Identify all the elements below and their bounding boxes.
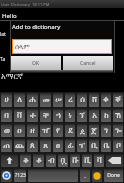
- staticText: Hello: [2, 12, 17, 20]
- button[interactable]: ኸ: [113, 109, 123, 122]
- button[interactable]: ቨ: [14, 109, 25, 122]
- staticText: ሀ: [4, 96, 9, 104]
- button[interactable]: ቢ: [89, 139, 99, 152]
- staticText: lat: [0, 31, 6, 38]
- staticText: አማርኛ: [1, 73, 23, 81]
- staticText: ሠ: [55, 96, 62, 104]
- staticText: User Dictionary 18:11 PM: [1, 2, 50, 7]
- button[interactable]: ጰ: [27, 139, 38, 152]
- button[interactable]: አ: [89, 109, 99, 122]
- button[interactable]: ዠ: [40, 124, 51, 137]
- staticText: ረ: [68, 96, 73, 104]
- button[interactable]: Backspace: [106, 154, 123, 167]
- button[interactable]: .: [80, 169, 90, 182]
- button[interactable]: ደ: [65, 124, 75, 137]
- button[interactable]: የ: [53, 124, 63, 137]
- staticText: ለ: [17, 96, 22, 104]
- staticText: ጸ: [43, 142, 48, 150]
- button[interactable]: [28, 169, 78, 182]
- staticText: ቐ: [115, 96, 121, 104]
- button[interactable]: ?123: [14, 169, 26, 182]
- staticText: ኸ: [115, 112, 121, 120]
- button[interactable]: በ: [1, 109, 12, 122]
- staticText: ጨ: [15, 142, 24, 150]
- button[interactable]: ቸ: [40, 109, 51, 122]
- button[interactable]: ቤ: [101, 139, 111, 152]
- button[interactable]: Shift: [1, 154, 18, 167]
- button[interactable]: ሰላም: [13, 40, 111, 53]
- button[interactable]: ቅ: [20, 154, 31, 167]
- button[interactable]: ኀ: [53, 109, 63, 122]
- button[interactable]: ፀ: [53, 139, 63, 152]
- staticText: ቢ: [91, 142, 98, 150]
- staticText: ጀ: [91, 127, 97, 135]
- button[interactable]: መ: [40, 93, 51, 107]
- staticText: በ: [4, 112, 9, 120]
- button[interactable]: ሸ: [89, 93, 99, 107]
- button[interactable]: ፐ: [77, 139, 87, 152]
- staticText: ተ: [30, 112, 36, 120]
- staticText: ሰላም: [15, 43, 30, 50]
- button[interactable]: ዸ: [77, 124, 87, 137]
- button[interactable]: ዐ: [14, 124, 25, 137]
- button[interactable]: ቧ: [58, 154, 68, 167]
- button[interactable]: ሐ: [27, 93, 38, 107]
- button[interactable]: ወ: [1, 124, 12, 137]
- staticText: ዸ: [80, 127, 85, 135]
- staticText: ቅ: [23, 157, 29, 165]
- button[interactable]: ሰ: [77, 93, 87, 107]
- staticText: ቪ: [84, 157, 91, 165]
- button[interactable]: ቩ: [70, 154, 80, 167]
- button[interactable]: ጸ: [40, 139, 51, 152]
- staticText: ጠ: [3, 142, 10, 150]
- button[interactable]: ቀ: [101, 93, 111, 107]
- button[interactable]: ጠ: [1, 139, 12, 152]
- staticText: ቤ: [103, 142, 110, 150]
- staticText: Done: [107, 172, 120, 179]
- button[interactable]: ዘ: [27, 124, 38, 137]
- button[interactable]: ቪ: [82, 154, 92, 167]
- button[interactable]: ቆ: [33, 154, 44, 167]
- button[interactable]: ረ: [65, 93, 75, 107]
- staticText: ደ: [68, 127, 73, 135]
- staticText: ቫ: [97, 157, 102, 165]
- button[interactable]: ጨ: [14, 139, 25, 152]
- staticText: Add to dictionary: [12, 23, 61, 31]
- button[interactable]: Done: [104, 169, 123, 182]
- staticText: መ: [42, 96, 50, 104]
- button[interactable]: ከ: [101, 109, 111, 122]
- staticText: የ: [56, 127, 60, 135]
- staticText: አ: [92, 112, 97, 120]
- button[interactable]: ጀ: [89, 124, 99, 137]
- staticText: ቀ: [103, 96, 109, 104]
- staticText: OK: [32, 60, 40, 67]
- staticText: ?123: [15, 172, 26, 179]
- button[interactable]: ብ: [46, 154, 56, 167]
- staticText: ሰ: [80, 96, 85, 104]
- staticText: ቩ: [72, 157, 79, 165]
- staticText: ኘ: [79, 112, 85, 120]
- staticText: ዐ: [17, 127, 22, 135]
- button[interactable]: ሠ: [53, 93, 63, 107]
- button[interactable]: ገ: [101, 124, 111, 137]
- button[interactable]: ቦ: [113, 139, 123, 152]
- button[interactable]: ተ: [27, 109, 38, 122]
- staticText: ወ: [4, 127, 10, 135]
- staticText: ቦ: [116, 142, 121, 150]
- button[interactable]: ቫ: [94, 154, 104, 167]
- button[interactable]: ነ: [65, 109, 75, 122]
- button[interactable]: ሀ: [1, 93, 12, 107]
- button[interactable]: ለ: [14, 93, 25, 107]
- button[interactable]: OK: [11, 56, 61, 70]
- button[interactable]: Cancel: [63, 56, 113, 70]
- staticText: ከ: [104, 112, 109, 120]
- button[interactable]: ፈ: [65, 139, 75, 152]
- button[interactable]: ኘ: [77, 109, 87, 122]
- button[interactable]: Emoji: [92, 169, 102, 182]
- staticText: ቆ: [36, 157, 42, 165]
- button[interactable]: ጐ: [113, 124, 123, 137]
- staticText: .: [84, 172, 86, 180]
- button[interactable]: ቐ: [113, 93, 123, 107]
- button[interactable]: Settings: [1, 169, 12, 182]
- staticText: Ta: [0, 56, 6, 63]
